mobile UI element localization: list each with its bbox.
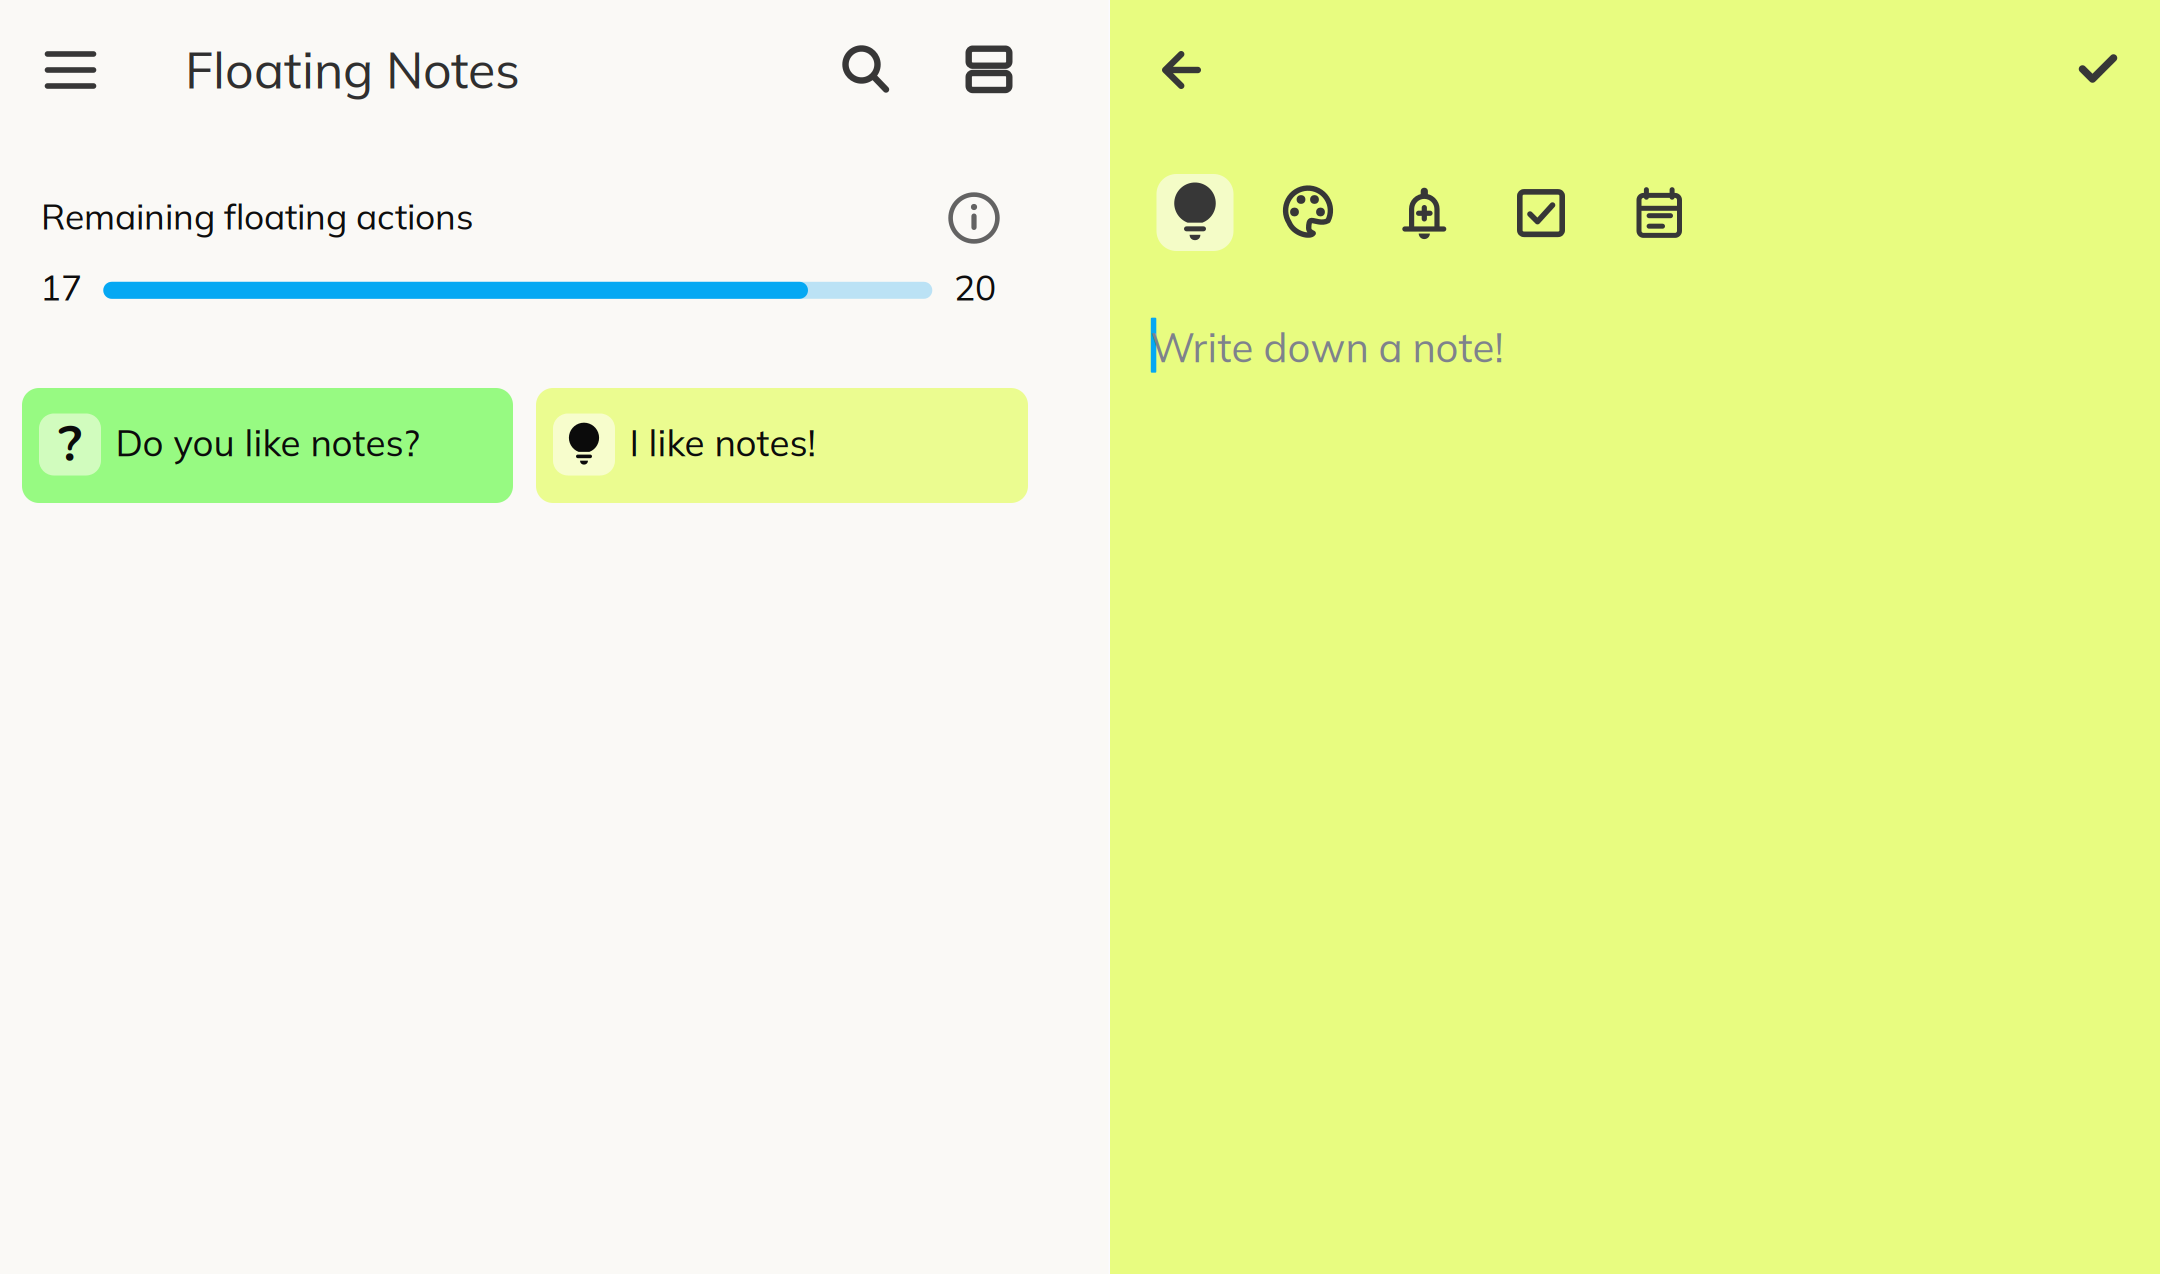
button[interactable]: Note style — [1156, 174, 1233, 251]
staticText: Write down a note! — [1150, 322, 1503, 372]
staticText: 20 — [954, 265, 996, 309]
button[interactable]: Back — [1136, 25, 1227, 115]
button[interactable]: Menu — [23, 27, 118, 113]
staticText: Remaining floating actions — [41, 194, 474, 238]
button[interactable]: Add reminder — [1390, 175, 1459, 254]
button[interactable]: Save note — [2051, 27, 2145, 110]
button[interactable]: Add checklist — [1505, 177, 1577, 249]
button[interactable]: ? — [22, 388, 513, 503]
button[interactable]: About floating actions — [932, 176, 1016, 260]
staticText: Floating Notes — [185, 38, 520, 101]
staticText: 17 — [40, 265, 82, 309]
button[interactable]: Note colour — [1268, 172, 1348, 254]
staticText: Do you like notes? — [115, 419, 419, 465]
staticText: ? — [58, 409, 81, 478]
button[interactable]: Search — [820, 23, 911, 115]
staticText: I like notes! — [629, 419, 815, 465]
button[interactable]: Change layout — [943, 23, 1034, 115]
button[interactable]: Add date — [1624, 175, 1694, 250]
button[interactable]: I like notes! — [536, 388, 1028, 503]
